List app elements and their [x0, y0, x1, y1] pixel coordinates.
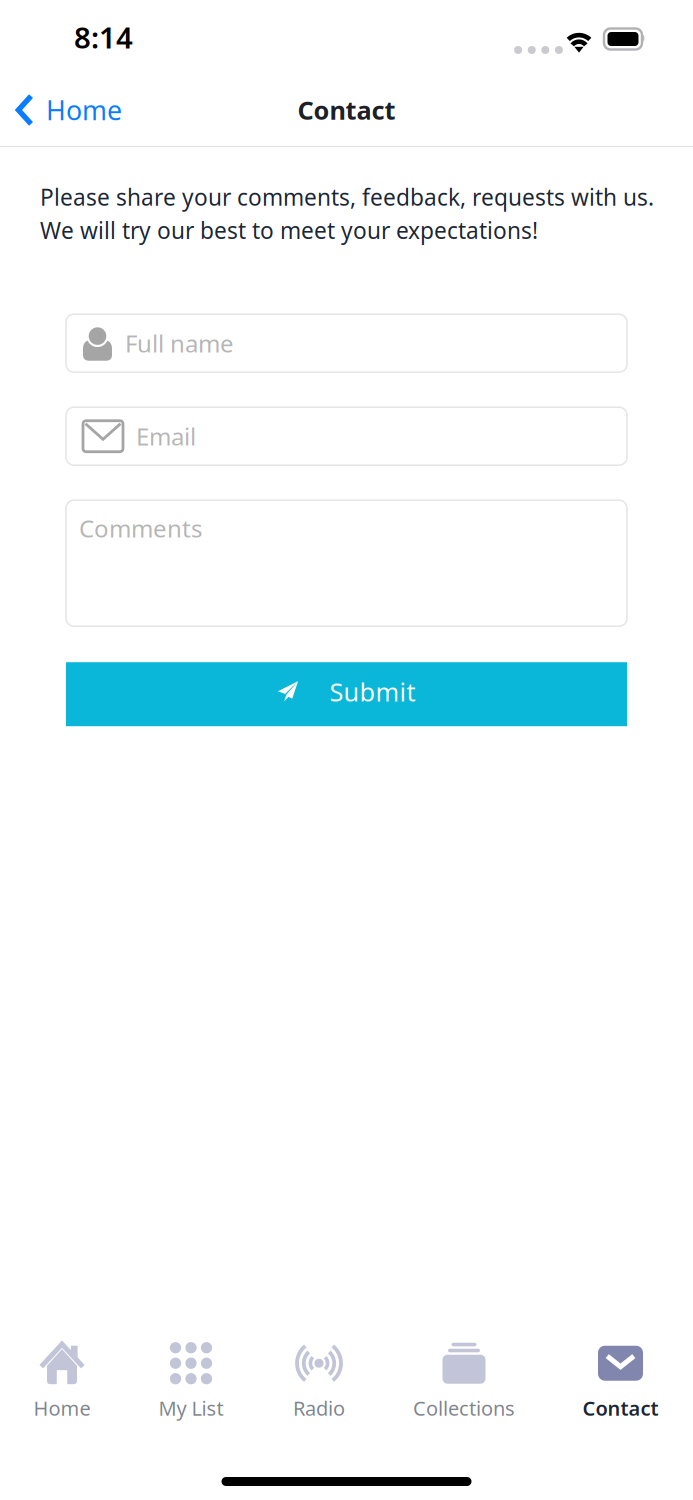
button[interactable]: Submit [66, 662, 627, 726]
staticText: Home [46, 92, 122, 128]
staticText: Submit [329, 675, 415, 708]
button[interactable]: Home [0, 79, 140, 141]
button[interactable]: Comments [66, 500, 627, 626]
staticText: 8:14 [74, 17, 133, 56]
staticText: Contact [582, 1395, 658, 1421]
button[interactable]: Full name [66, 314, 627, 372]
staticText: Comments [79, 512, 202, 544]
staticText: We will try our best to meet your expect… [40, 215, 538, 245]
button[interactable]: My List [124, 1341, 258, 1429]
staticText: Full name [125, 327, 234, 359]
staticText: My List [158, 1395, 223, 1421]
button[interactable]: Radio [258, 1341, 380, 1429]
staticText: Please share your comments, feedback, re… [40, 182, 654, 212]
staticText: Radio [293, 1395, 345, 1421]
staticText: Email [136, 420, 196, 452]
staticText: Home [33, 1395, 90, 1421]
button[interactable]: Contact [548, 1341, 693, 1429]
button[interactable]: Collections [380, 1341, 548, 1429]
button[interactable]: Home [0, 1341, 124, 1429]
staticText: Collections [413, 1395, 515, 1421]
staticText: Contact [297, 93, 395, 127]
button[interactable]: Email [66, 407, 627, 465]
